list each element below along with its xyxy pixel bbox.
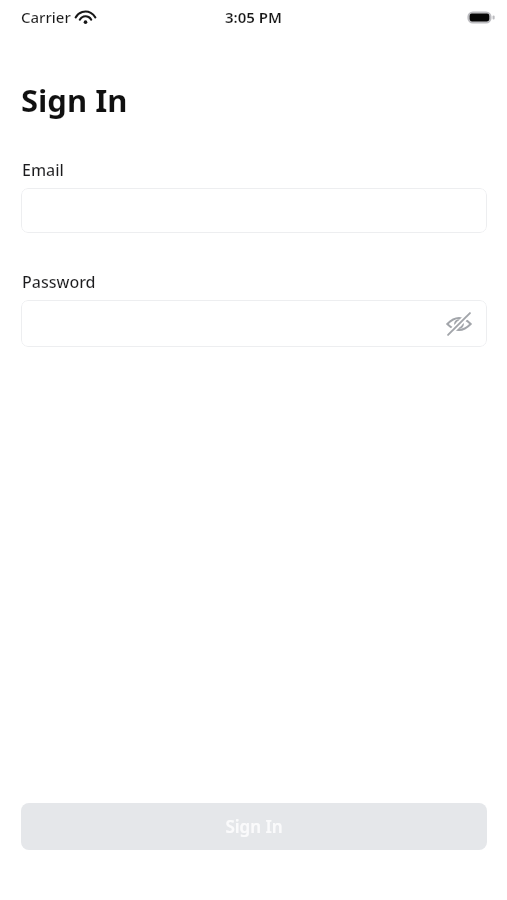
staticText: Password [22, 271, 96, 293]
staticText: Sign In [21, 79, 128, 121]
staticText: Email [22, 159, 64, 181]
staticText: 3:05 PM [225, 7, 282, 27]
staticText: Sign In [225, 815, 283, 838]
button[interactable]: Email field [21, 188, 487, 233]
button[interactable]: Show password [444, 309, 474, 339]
staticText: Carrier [21, 7, 71, 27]
button[interactable]: Password field [21, 300, 487, 347]
